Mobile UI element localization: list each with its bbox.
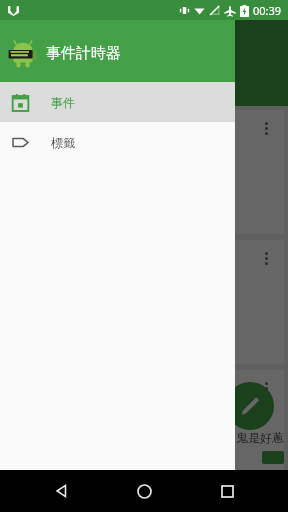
staticText: 事件 xyxy=(51,95,75,110)
button[interactable]: More options xyxy=(4,240,284,364)
button[interactable]: Recent apps xyxy=(205,470,249,512)
button[interactable]: More options xyxy=(4,110,284,234)
button[interactable]: Back xyxy=(39,470,83,512)
button[interactable]: More options xyxy=(261,118,272,139)
button[interactable]: Add event xyxy=(226,382,274,430)
staticText: 事件計時器 xyxy=(46,44,121,63)
button[interactable]: Home xyxy=(122,470,166,512)
staticText: 00:39 xyxy=(253,3,282,18)
button[interactable]: More options xyxy=(261,378,272,399)
button[interactable]: More options xyxy=(261,248,272,269)
button[interactable]: 事件 xyxy=(0,82,235,122)
button[interactable]: More options xyxy=(4,370,284,494)
staticText: 標籤 xyxy=(51,135,75,150)
button[interactable]: 標籤 xyxy=(0,122,235,162)
staticText: 鬼是好蔥 xyxy=(236,430,284,445)
